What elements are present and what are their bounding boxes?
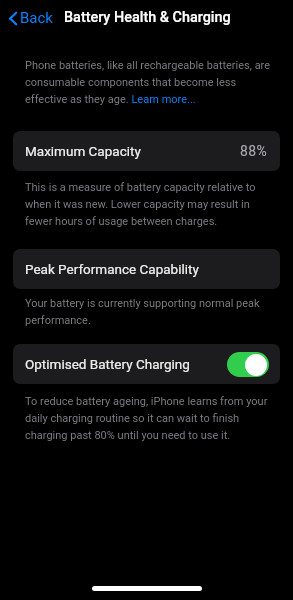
staticText: effective as they age. Learn more... <box>25 93 196 110</box>
staticText: daily charging routine so it can wait to… <box>25 412 240 429</box>
staticText: Battery Health & Charging <box>64 9 231 26</box>
button[interactable]: Maximum Capacity <box>13 131 280 171</box>
button[interactable]: Phone batteries, like all rechargeable b… <box>0 31 283 110</box>
staticText: Maximum Capacity <box>25 143 141 159</box>
staticText: fewer hours of usage between charges. <box>25 215 218 232</box>
staticText: when it was new. Lower capacity may resu… <box>25 198 250 215</box>
staticText: performance. <box>25 314 91 331</box>
staticText: charging past 80% until you need to use … <box>25 429 231 446</box>
staticText: Peak Performance Capability <box>25 261 199 277</box>
button[interactable]: Optimised Battery Charging <box>13 344 280 384</box>
staticText: consumable components that become less <box>25 76 237 93</box>
staticText: 88% <box>240 143 268 159</box>
staticText: Back <box>20 9 53 27</box>
staticText: Your battery is currently supporting nor… <box>25 297 260 314</box>
staticText: To reduce battery ageing, iPhone learns … <box>25 395 268 412</box>
staticText: Phone batteries, like all rechargeable b… <box>25 59 271 76</box>
button[interactable]: Peak Performance Capability <box>13 249 280 289</box>
button[interactable]: Optimised Battery Charging toggle <box>227 352 269 377</box>
staticText: This is a measure of battery capacity re… <box>25 181 256 198</box>
other: Back <box>9 12 17 25</box>
staticText: Optimised Battery Charging <box>25 356 190 372</box>
button[interactable]: Back <box>5 4 59 32</box>
